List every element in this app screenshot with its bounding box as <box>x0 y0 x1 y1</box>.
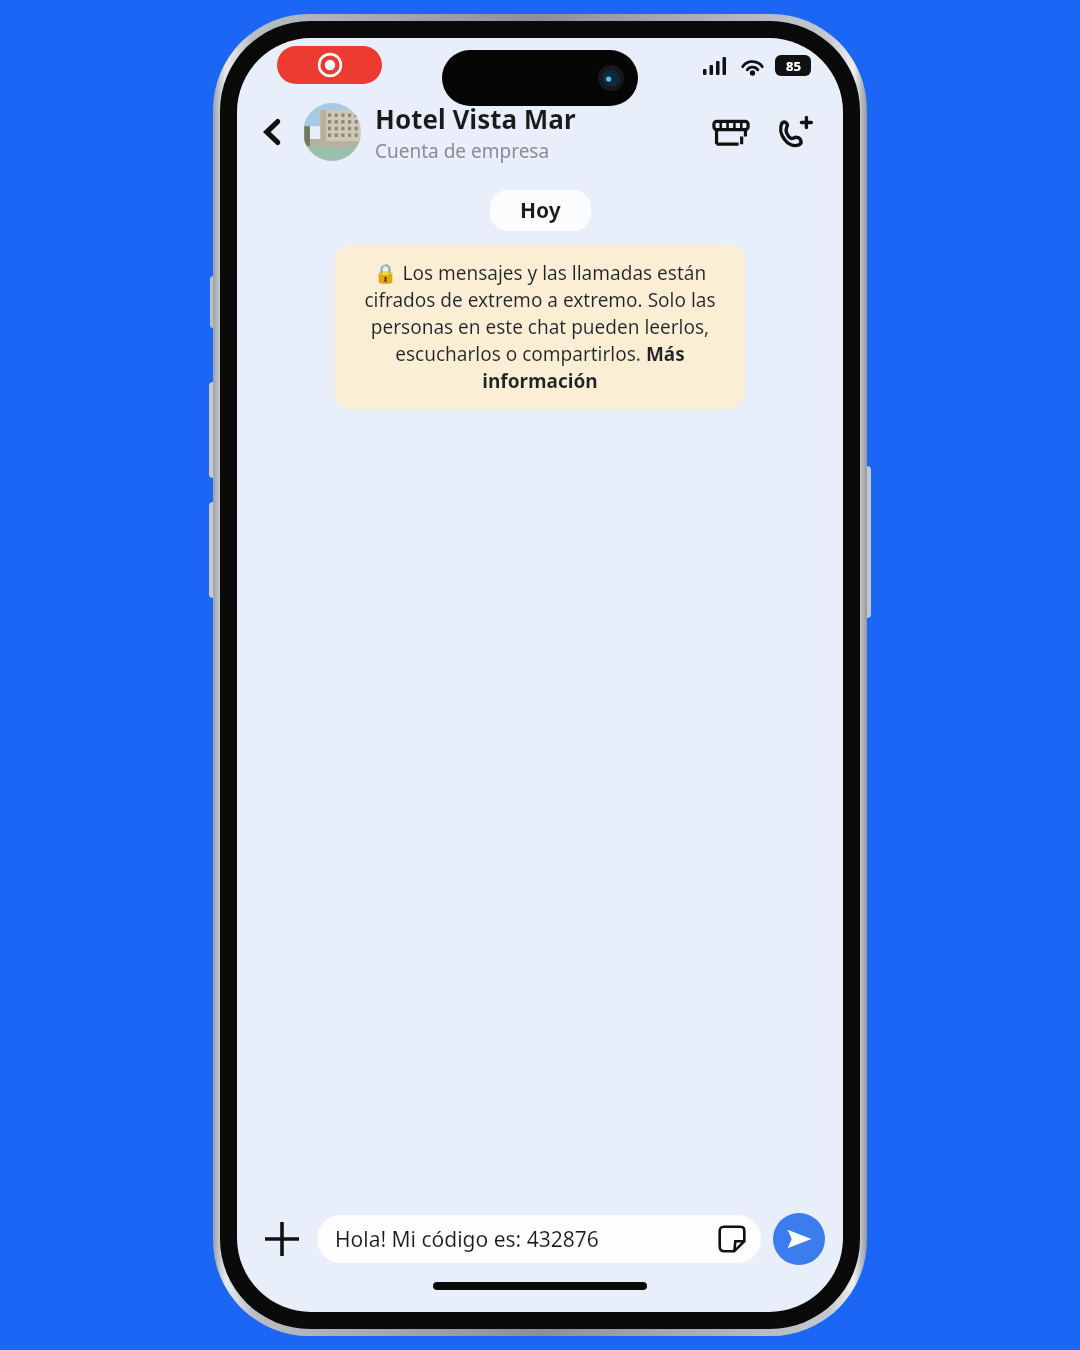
button[interactable]: Sticker <box>715 1222 749 1256</box>
staticText: 85 <box>786 57 801 75</box>
staticText: Hoy <box>520 196 561 225</box>
staticText: Hotel Vista Mar <box>375 101 576 136</box>
button[interactable]: 🔒 Los mensajes y las llamadas están cifr… <box>335 245 745 409</box>
button[interactable]: Hola! Mi código es: 432876 <box>317 1215 761 1263</box>
button[interactable]: Hotel Vista Mar <box>375 101 705 164</box>
staticText: Cuenta de empresa <box>375 138 550 164</box>
button[interactable]: Back <box>247 106 299 158</box>
staticText: 🔒 Los mensajes y las llamadas están cifr… <box>351 260 729 394</box>
staticText: Hola! Mi código es: 432876 <box>335 1225 715 1254</box>
button[interactable]: Add call <box>769 106 821 158</box>
button[interactable]: Send <box>773 1213 825 1265</box>
button[interactable]: Recording <box>277 46 382 84</box>
button[interactable]: Business catalog <box>705 106 757 158</box>
button[interactable]: Hoy <box>490 190 591 231</box>
button[interactable]: Attach <box>255 1212 309 1266</box>
